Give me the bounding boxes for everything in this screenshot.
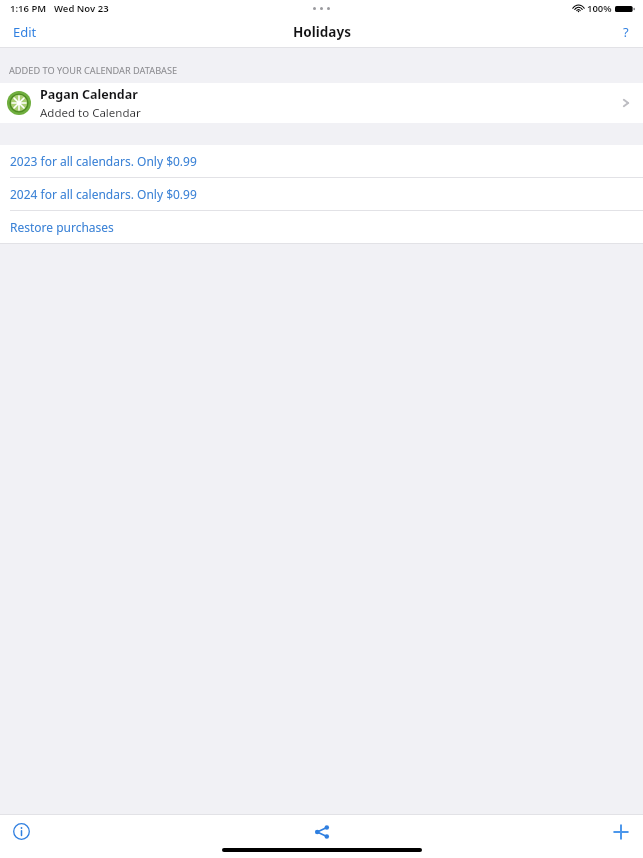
- staticText: 1:16 PM: [10, 2, 47, 15]
- staticText: 100%: [587, 2, 612, 15]
- staticText: Holidays: [293, 23, 351, 41]
- staticText: Edit: [13, 23, 37, 41]
- staticText: Restore purchases: [10, 219, 114, 235]
- staticText: Added to Calendar: [40, 105, 141, 121]
- button[interactable]: Edit: [0, 17, 50, 47]
- staticText: 2023 for all calendars. Only $0.99: [10, 153, 197, 169]
- button[interactable]: 2024 for all calendars. Only $0.99: [0, 178, 643, 210]
- staticText: ADDED TO YOUR CALENDAR DATABASE: [9, 64, 178, 77]
- staticText: Wed Nov 23: [54, 2, 109, 15]
- button[interactable]: Add: [609, 820, 633, 844]
- button[interactable]: 2023 for all calendars. Only $0.99: [0, 145, 643, 177]
- staticText: Pagan Calendar: [40, 86, 138, 103]
- staticText: ?: [623, 23, 629, 41]
- button[interactable]: Help: [609, 18, 643, 46]
- button[interactable]: Share: [310, 820, 334, 844]
- staticText: 2024 for all calendars. Only $0.99: [10, 186, 197, 202]
- button[interactable]: Pagan Calendar: [0, 83, 643, 123]
- button[interactable]: Info: [10, 820, 32, 842]
- button[interactable]: Restore purchases: [0, 211, 643, 243]
